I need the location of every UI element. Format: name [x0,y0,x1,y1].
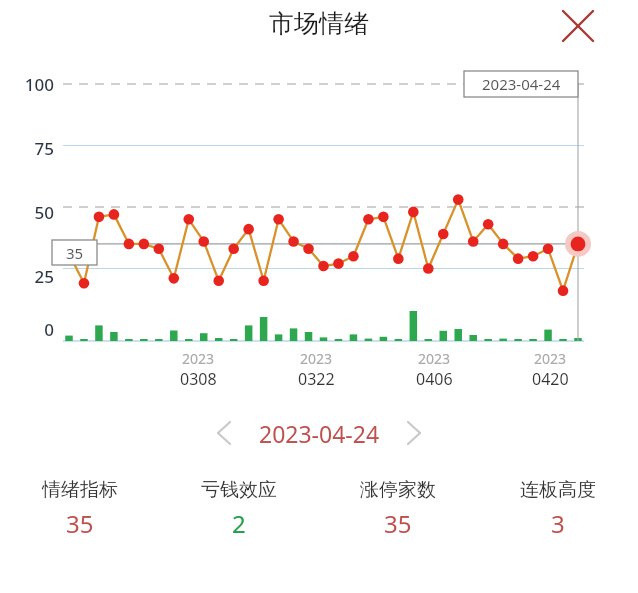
button[interactable]: 连板高度 [478,478,638,540]
staticText: 2023-04-24 [482,74,561,94]
staticText: 0406 [416,368,453,390]
staticText: 35 [66,507,94,540]
staticText: 情绪指标 [42,478,118,502]
staticText: 50 [0,201,54,224]
button[interactable]: Close [552,0,604,52]
button[interactable]: 情绪指标 [0,478,159,540]
button[interactable]: Previous day [204,413,244,453]
staticText: 市场情绪 [0,8,638,39]
staticText: 35 [384,507,412,540]
staticText: 亏钱效应 [201,478,277,502]
staticText: 75 [0,137,54,160]
staticText: 2023 [418,349,451,368]
staticText: 3 [551,507,565,540]
staticText: 100 [0,73,54,96]
button[interactable]: Next day [394,413,434,453]
staticText: 0 [0,318,54,341]
button[interactable]: 亏钱效应 [159,478,318,540]
staticText: 35 [66,243,84,263]
staticText: 2023-04-24 [259,418,380,449]
button[interactable]: 涨停家数 [318,478,478,540]
staticText: 2023 [534,349,567,368]
staticText: 连板高度 [520,478,596,502]
button[interactable]: 2023-04-24 [244,413,394,453]
staticText: 涨停家数 [360,478,436,502]
staticText: 0420 [532,368,569,390]
staticText: 25 [0,265,54,288]
staticText: 2023 [182,349,215,368]
staticText: 2 [232,507,246,540]
staticText: 0322 [298,368,335,390]
staticText: 0308 [180,368,217,390]
staticText: 2023 [300,349,333,368]
